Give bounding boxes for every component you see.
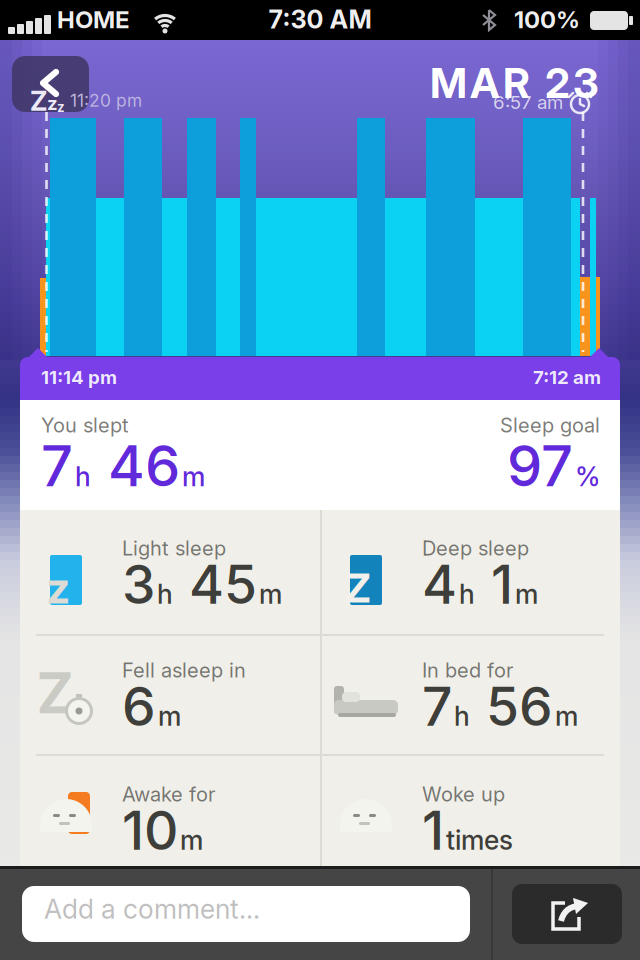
staticText: 11:20 pm (70, 90, 142, 111)
staticText: 1 (422, 798, 444, 862)
staticText: 3 (122, 552, 155, 616)
staticText: Light sleep (122, 536, 226, 560)
staticText: z (46, 562, 70, 614)
staticText: 7:12 am (533, 366, 601, 389)
staticText: 7 (41, 432, 73, 500)
staticText: times (446, 824, 513, 856)
staticText: Woke up (422, 782, 505, 806)
staticText: 45 (175, 552, 257, 616)
staticText: Z (36, 659, 73, 727)
staticText: Add a comment... (44, 893, 260, 925)
staticText: % (575, 460, 600, 493)
staticText: h (157, 578, 173, 610)
staticText: Fell asleep in (122, 658, 246, 682)
button[interactable] (12, 56, 89, 112)
staticText: 100% (514, 5, 580, 34)
staticText: m (182, 460, 205, 493)
staticText: 11:14 pm (41, 366, 117, 389)
staticText: m (515, 578, 538, 610)
staticText: Z (30, 85, 47, 117)
staticText: m (180, 824, 203, 856)
staticText: h (75, 460, 91, 493)
staticText: 6:57 am (493, 91, 563, 114)
staticText: Awake for (122, 782, 215, 806)
staticText: In bed for (422, 658, 513, 682)
staticText: 97 (507, 432, 573, 500)
staticText: 7:30 AM (268, 4, 371, 35)
staticText: 10 (122, 798, 178, 862)
staticText: m (158, 700, 181, 732)
staticText: 6 (122, 674, 156, 738)
staticText: You slept (41, 413, 129, 437)
staticText: 1 (477, 552, 513, 616)
button[interactable] (512, 884, 622, 944)
staticText: h (459, 578, 475, 610)
staticText: z (47, 92, 58, 115)
staticText: Deep sleep (422, 536, 529, 560)
staticText: Sleep goal (500, 413, 600, 437)
staticText: h (454, 700, 470, 732)
staticText: MAR 23 (430, 58, 599, 108)
staticText: z (57, 99, 65, 115)
staticText: HOME (57, 5, 130, 34)
staticText: 56 (472, 674, 553, 738)
staticText: m (555, 700, 578, 732)
staticText: Z (345, 564, 371, 612)
staticText: m (259, 578, 282, 610)
button[interactable]: Add a comment... (22, 886, 470, 942)
staticText: 46 (93, 432, 180, 500)
staticText: 4 (422, 552, 457, 616)
staticText: 7 (422, 674, 452, 738)
